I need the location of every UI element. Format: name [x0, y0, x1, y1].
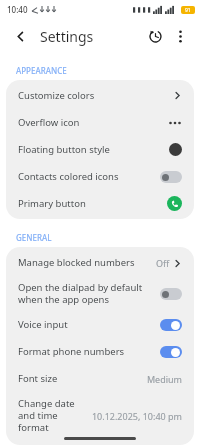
staticText: Voice input — [18, 318, 154, 331]
staticText: 10.12.2025, 10:40 pm — [91, 410, 182, 422]
staticText: Medium — [146, 373, 182, 385]
button[interactable]: More options — [168, 24, 192, 48]
staticText: Open the dialpad by default when the app… — [18, 281, 154, 306]
button[interactable]: Back — [8, 24, 32, 48]
staticText: 91 — [185, 7, 191, 14]
staticText: 10:40 — [7, 4, 28, 15]
button[interactable]: Language — [6, 439, 194, 443]
staticText: Overflow icon — [18, 116, 162, 129]
staticText: Off — [156, 257, 170, 269]
button[interactable]: Off — [160, 171, 182, 183]
staticText: Floating button style — [18, 143, 163, 156]
button[interactable]: Change date and time format — [6, 392, 194, 439]
staticText: Change date and time format — [18, 397, 85, 434]
button[interactable]: Format phone numbers — [6, 338, 194, 365]
button[interactable]: Customize colors — [6, 82, 194, 109]
staticText: APPEARANCE — [16, 65, 67, 76]
button[interactable]: Voice input — [6, 311, 194, 338]
staticText: Contacts colored icons — [18, 170, 154, 183]
button[interactable]: Open the dialpad by default when the app… — [6, 276, 194, 311]
staticText: Manage blocked numbers — [18, 256, 150, 269]
staticText: Customize colors — [18, 89, 167, 102]
staticText: Format phone numbers — [18, 345, 154, 358]
staticText: Settings — [40, 27, 94, 46]
button[interactable]: Floating button style — [6, 136, 194, 163]
button[interactable]: Font size — [6, 365, 194, 392]
staticText: Font size — [18, 372, 140, 385]
staticText: GENERAL — [16, 232, 52, 243]
button[interactable]: Contacts colored icons — [6, 163, 194, 190]
button[interactable]: Primary button — [6, 190, 194, 217]
button[interactable]: Overflow icon — [6, 109, 194, 136]
button[interactable]: On — [160, 346, 182, 358]
button[interactable]: On — [160, 319, 182, 331]
button[interactable]: Call history — [142, 23, 168, 49]
button[interactable]: Off — [160, 288, 182, 300]
button[interactable]: Manage blocked numbers — [6, 249, 194, 276]
staticText: Primary button — [18, 197, 161, 210]
